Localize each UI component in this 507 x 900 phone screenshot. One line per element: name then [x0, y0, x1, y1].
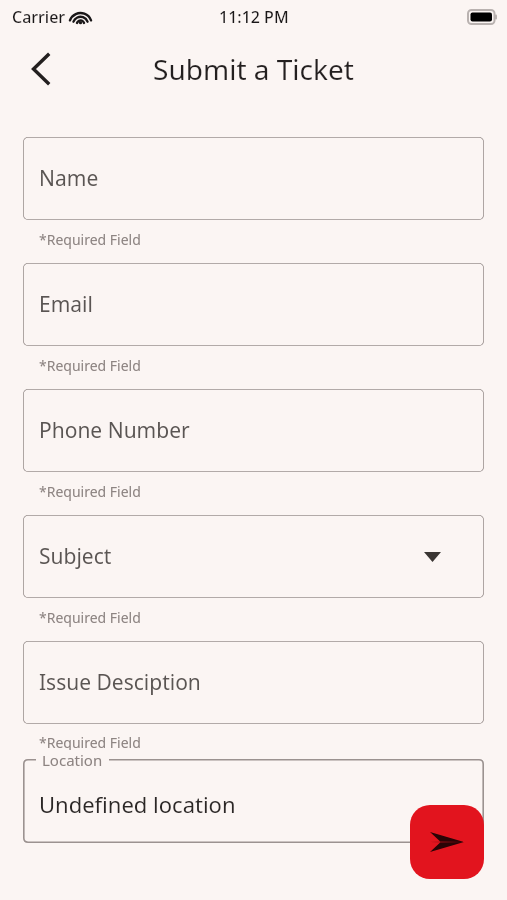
staticText: *Required Field	[39, 230, 141, 249]
staticText: Location	[42, 750, 103, 770]
button[interactable]: Email	[23, 263, 484, 346]
staticText: *Required Field	[39, 356, 141, 375]
staticText: Name	[39, 164, 99, 193]
staticText: Phone Number	[39, 416, 190, 445]
button[interactable]: Phone Number	[23, 389, 484, 472]
button[interactable]: Issue Desciption	[23, 641, 484, 724]
staticText: Subject	[39, 542, 112, 571]
button[interactable]: Back	[16, 45, 64, 93]
staticText: *Required Field	[39, 482, 141, 501]
button[interactable]: Subject	[23, 515, 484, 598]
staticText: Email	[39, 290, 93, 319]
staticText: Carrier	[12, 6, 66, 28]
staticText: *Required Field	[39, 608, 141, 627]
button[interactable]: Location	[23, 759, 484, 843]
staticText: 11:12 PM	[219, 6, 289, 28]
staticText: *Required Field	[39, 733, 141, 752]
button[interactable]: Send	[410, 805, 484, 879]
staticText: Issue Desciption	[39, 668, 201, 697]
staticText: Undefined location	[39, 789, 236, 819]
button[interactable]: Name	[23, 137, 484, 220]
staticText: Submit a Ticket	[153, 50, 354, 88]
